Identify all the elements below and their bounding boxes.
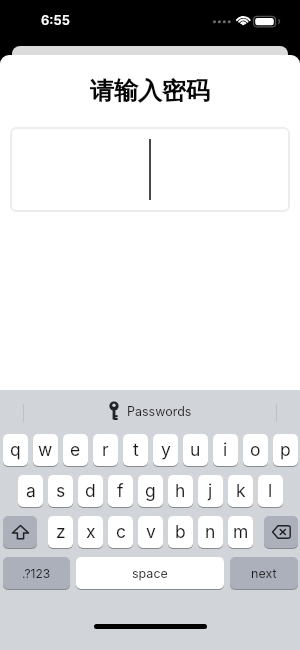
staticText: n: [205, 521, 216, 542]
staticText: 6:55: [41, 12, 70, 28]
button[interactable]: v: [138, 516, 163, 548]
button[interactable]: o: [243, 434, 268, 466]
staticText: h: [175, 480, 186, 501]
button[interactable]: [264, 516, 298, 548]
staticText: k: [236, 480, 246, 501]
staticText: o: [250, 439, 261, 460]
staticText: z: [56, 521, 66, 542]
staticText: u: [190, 439, 201, 460]
button[interactable]: .?123: [3, 557, 70, 589]
button[interactable]: i: [213, 434, 238, 466]
staticText: e: [70, 439, 81, 460]
staticText: f: [117, 480, 124, 501]
button[interactable]: c: [108, 516, 133, 548]
button[interactable]: w: [33, 434, 58, 466]
staticText: .?123: [22, 566, 51, 581]
staticText: w: [38, 439, 53, 460]
staticText: q: [10, 439, 21, 460]
staticText: m: [233, 521, 249, 542]
staticText: r: [102, 439, 109, 460]
button[interactable]: p: [273, 434, 298, 466]
button[interactable]: n: [198, 516, 223, 548]
staticText: v: [146, 521, 156, 542]
button[interactable]: next: [230, 557, 298, 589]
staticText: p: [280, 439, 291, 460]
staticText: 请输入密码: [0, 76, 300, 112]
staticText: d: [85, 480, 96, 501]
button[interactable]: z: [48, 516, 73, 548]
staticText: c: [116, 521, 126, 542]
staticText: t: [133, 439, 139, 460]
button[interactable]: d: [78, 475, 103, 507]
button[interactable]: y: [153, 434, 178, 466]
button[interactable]: u: [183, 434, 208, 466]
staticText: Passwords: [127, 404, 192, 419]
button[interactable]: l: [258, 475, 283, 507]
button[interactable]: h: [168, 475, 193, 507]
button[interactable]: Passwords: [0, 390, 300, 432]
staticText: a: [26, 480, 36, 501]
button[interactable]: a: [18, 475, 43, 507]
button[interactable]: [10, 127, 290, 212]
staticText: b: [175, 521, 186, 542]
staticText: space: [132, 566, 168, 581]
button[interactable]: f: [108, 475, 133, 507]
button[interactable]: x: [78, 516, 103, 548]
button[interactable]: q: [3, 434, 28, 466]
button[interactable]: k: [228, 475, 253, 507]
button[interactable]: space: [76, 557, 224, 589]
button[interactable]: t: [123, 434, 148, 466]
button[interactable]: s: [48, 475, 73, 507]
button[interactable]: r: [93, 434, 118, 466]
button[interactable]: [3, 516, 37, 548]
button[interactable]: e: [63, 434, 88, 466]
staticText: l: [268, 480, 273, 501]
staticText: x: [86, 521, 96, 542]
staticText: next: [251, 566, 277, 581]
button[interactable]: j: [198, 475, 223, 507]
staticText: j: [208, 480, 213, 501]
button[interactable]: g: [138, 475, 163, 507]
button[interactable]: m: [228, 516, 253, 548]
staticText: s: [56, 480, 66, 501]
staticText: y: [161, 439, 171, 460]
button[interactable]: b: [168, 516, 193, 548]
staticText: g: [145, 480, 156, 501]
staticText: i: [223, 439, 228, 460]
